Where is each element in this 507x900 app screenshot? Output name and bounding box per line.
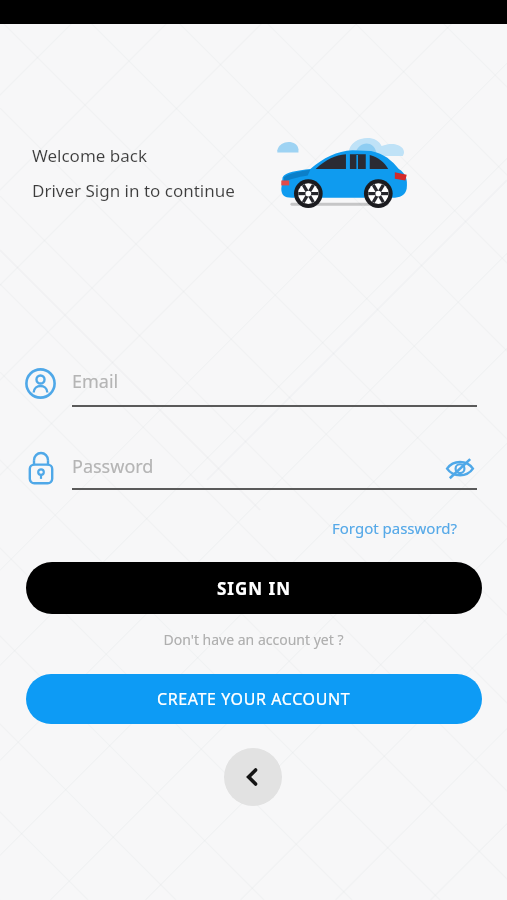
button[interactable]: Password [0,443,507,495]
staticText: Email [72,369,119,394]
staticText: Password [72,454,154,479]
staticText: Don't have an account yet ? [0,630,507,649]
button[interactable]: CREATE YOUR ACCOUNT [26,674,482,724]
staticText: Forgot password? [332,518,458,538]
button[interactable]: Show password [443,451,477,485]
button[interactable]: Back [224,748,282,806]
other: Password [27,451,55,485]
other: Email [25,368,56,399]
staticText: SIGN IN [217,577,291,600]
button[interactable]: Email [0,358,507,410]
staticText: Welcome back [32,144,148,167]
button[interactable]: Forgot password? [330,516,460,540]
staticText: CREATE YOUR ACCOUNT [157,688,351,710]
button[interactable]: SIGN IN [26,562,482,614]
staticText: Driver Sign in to continue [32,179,235,202]
